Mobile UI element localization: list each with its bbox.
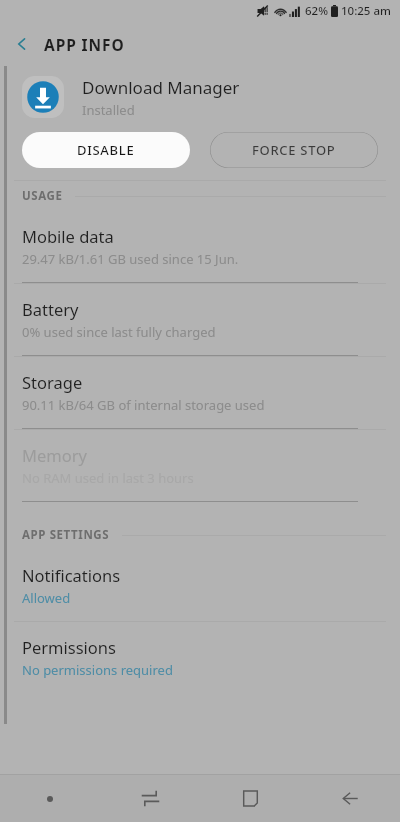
button[interactable]: Storage (0, 357, 400, 428)
staticText: Download Manager (82, 76, 240, 99)
button[interactable]: Permissions (0, 622, 400, 693)
staticText: USAGE (22, 188, 63, 204)
button[interactable]: Back (300, 775, 400, 822)
staticText: 29.47 kB/1.61 GB used since 15 Jun. (22, 250, 239, 268)
staticText: Allowed (22, 589, 71, 607)
button[interactable]: FORCE STOP (210, 132, 378, 168)
staticText: 90.11 kB/64 GB of internal storage used (22, 396, 265, 414)
staticText: DISABLE (77, 141, 135, 159)
staticText: No RAM used in last 3 hours (22, 469, 194, 487)
button[interactable]: DISABLE (22, 132, 190, 168)
staticText: Battery (22, 298, 79, 320)
button[interactable]: Memory (0, 430, 400, 501)
button[interactable]: Recents (100, 775, 200, 822)
staticText: 0% used since last fully charged (22, 323, 216, 341)
staticText: APP SETTINGS (22, 527, 110, 543)
staticText: Storage (22, 371, 83, 393)
staticText: Notifications (22, 564, 121, 586)
button[interactable]: Mobile data (0, 211, 400, 282)
staticText: 62% (305, 3, 328, 19)
staticText: Memory (22, 444, 87, 466)
staticText: Mobile data (22, 225, 114, 247)
staticText: 10:25 am (341, 3, 391, 19)
staticText: APP INFO (44, 34, 125, 55)
button[interactable]: Battery (0, 284, 400, 355)
button[interactable]: Notifications (0, 550, 400, 621)
staticText: Installed (82, 101, 135, 119)
staticText: Permissions (22, 636, 116, 658)
button[interactable]: Back (0, 22, 44, 66)
staticText: FORCE STOP (252, 141, 336, 159)
staticText: No permissions required (22, 661, 173, 679)
button[interactable]: Home (200, 775, 300, 822)
